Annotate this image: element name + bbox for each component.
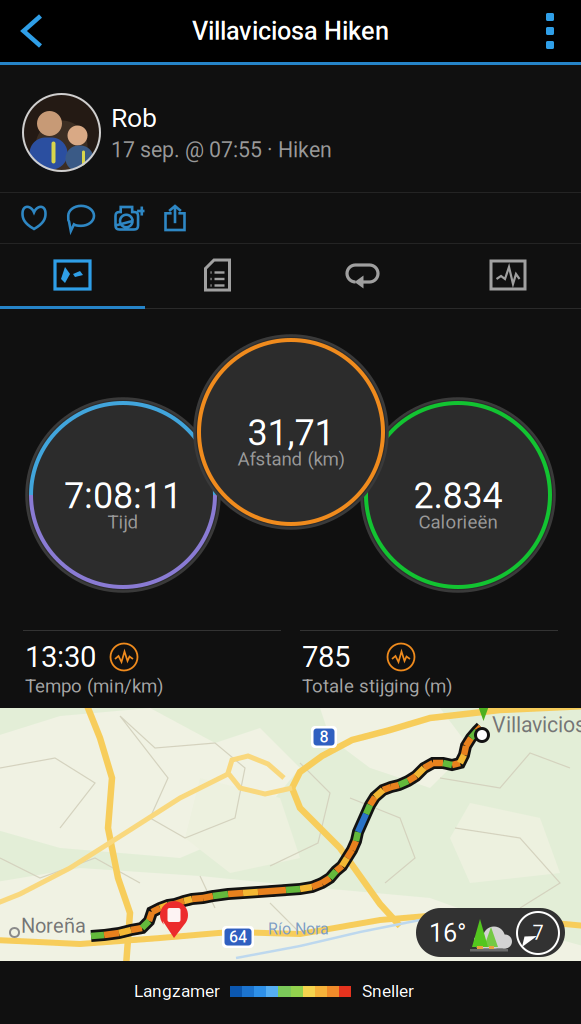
button[interactable]: Details <box>145 244 290 306</box>
staticText: Rob <box>111 102 157 134</box>
staticText: Langzamer <box>134 981 220 1001</box>
button[interactable]: Add photo <box>107 193 153 243</box>
button[interactable]: Share <box>152 193 198 243</box>
staticText: Tijd <box>107 511 138 533</box>
staticText: Totale stijging (m) <box>302 675 452 697</box>
staticText: 64 <box>229 928 247 946</box>
staticText: 7:08:11 <box>64 475 182 517</box>
staticText: Villaviciosa <box>492 712 581 737</box>
staticText: 2.834 <box>413 475 502 517</box>
button[interactable]: Back <box>0 0 62 62</box>
button[interactable]: Comment <box>57 193 103 243</box>
staticText: Tempo (min/km) <box>25 675 163 697</box>
button[interactable]: Map <box>0 244 145 306</box>
staticText: Sneller <box>362 981 414 1001</box>
staticText: 31,71 <box>247 412 334 454</box>
staticText: 16° <box>429 918 466 948</box>
staticText: Río Nora <box>268 920 329 938</box>
button[interactable]: Like <box>11 193 57 243</box>
staticText: 7 <box>532 921 543 945</box>
staticText: Afstand (km) <box>237 448 344 470</box>
button[interactable]: Charts <box>435 244 581 306</box>
staticText: 13:30 <box>25 640 96 674</box>
staticText: 785 <box>302 640 350 674</box>
staticText: 17 sep. @ 07:55 · Hiken <box>111 137 332 162</box>
staticText: 8 <box>319 728 328 746</box>
button[interactable]: More options <box>519 0 581 62</box>
staticText: Villaviciosa Hiken <box>192 16 389 46</box>
staticText: Noreña <box>21 914 86 938</box>
staticText: Calorieën <box>418 511 497 533</box>
button[interactable]: Laps <box>290 244 435 306</box>
